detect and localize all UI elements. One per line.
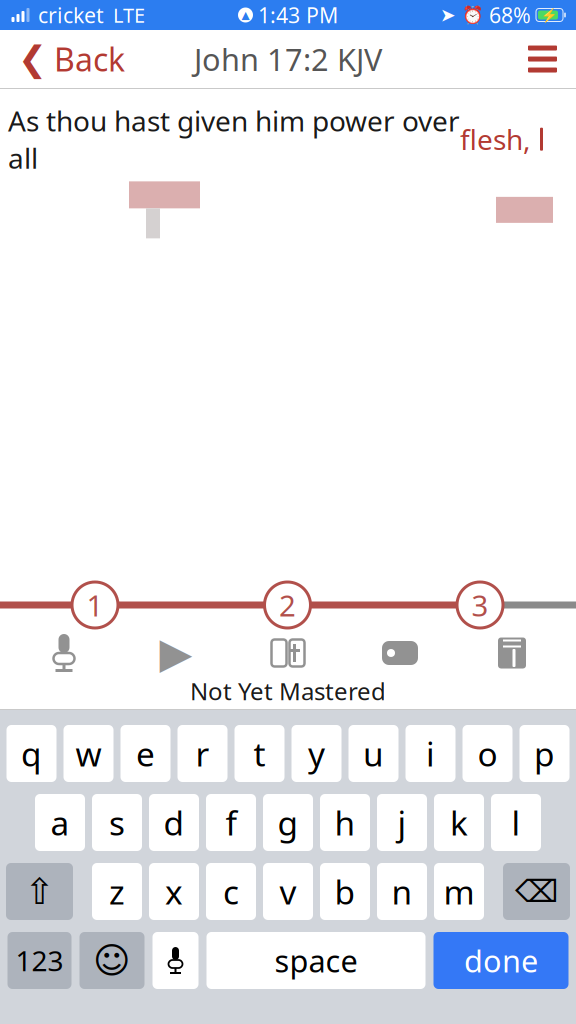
staticText: k bbox=[450, 800, 468, 845]
button[interactable]: g bbox=[263, 794, 313, 851]
staticText: p bbox=[534, 731, 555, 776]
button[interactable]: ☺ bbox=[79, 932, 144, 989]
button[interactable]: 2 bbox=[264, 582, 310, 628]
button[interactable]: l bbox=[491, 794, 541, 851]
staticText: c bbox=[223, 869, 239, 914]
button[interactable]: Record audio bbox=[8, 632, 120, 674]
staticText: z bbox=[109, 869, 125, 914]
button[interactable]: o bbox=[462, 725, 512, 782]
button[interactable]: q bbox=[6, 725, 56, 782]
staticText: 1 bbox=[86, 585, 103, 624]
button[interactable]: Open Bible bbox=[232, 632, 344, 674]
staticText: j bbox=[397, 800, 406, 845]
staticText: w bbox=[75, 731, 101, 776]
staticText: b bbox=[334, 869, 355, 914]
staticText: n bbox=[391, 869, 412, 914]
button[interactable]: x bbox=[149, 863, 199, 920]
button[interactable]: u bbox=[348, 725, 398, 782]
staticText: ▲ bbox=[241, 9, 249, 21]
button[interactable]: z bbox=[92, 863, 142, 920]
button[interactable]: j bbox=[377, 794, 427, 851]
button[interactable]: v bbox=[263, 863, 313, 920]
staticText: Not Yet Mastered bbox=[190, 675, 386, 707]
staticText: ➤ bbox=[440, 4, 456, 26]
staticText: ❮ bbox=[18, 39, 47, 79]
staticText: ⇧ bbox=[24, 871, 54, 912]
button[interactable]: r bbox=[177, 725, 227, 782]
staticText: ☺ bbox=[93, 940, 131, 981]
staticText: g bbox=[277, 800, 298, 845]
button[interactable]: p bbox=[519, 725, 569, 782]
staticText: r bbox=[195, 731, 209, 776]
button[interactable]: 1 bbox=[72, 582, 118, 628]
button[interactable]: 3 bbox=[457, 582, 503, 628]
staticText: Back bbox=[54, 38, 125, 80]
button[interactable]: done bbox=[433, 932, 568, 989]
staticText: ▶ bbox=[159, 629, 192, 677]
staticText: ⚡ bbox=[541, 7, 558, 23]
staticText: John 17:2 KJV bbox=[194, 39, 382, 79]
button[interactable]: b bbox=[320, 863, 370, 920]
staticText: q bbox=[21, 731, 42, 776]
button[interactable]: s bbox=[92, 794, 142, 851]
staticText: a bbox=[50, 800, 69, 845]
button[interactable]: i bbox=[405, 725, 455, 782]
staticText: u bbox=[363, 731, 384, 776]
staticText: 1:43 PM bbox=[258, 1, 338, 29]
button[interactable]: f bbox=[206, 794, 256, 851]
button[interactable]: n bbox=[377, 863, 427, 920]
button[interactable]: Menu bbox=[509, 30, 576, 88]
staticText: d bbox=[163, 800, 184, 845]
staticText: 123 bbox=[15, 942, 63, 979]
button[interactable]: y bbox=[291, 725, 341, 782]
button[interactable]: Play audio bbox=[120, 632, 232, 674]
button[interactable]: Delete bbox=[503, 863, 570, 920]
staticText: LTE bbox=[113, 2, 145, 28]
button[interactable]: Tags bbox=[344, 632, 456, 674]
button[interactable]: k bbox=[434, 794, 484, 851]
staticText: i bbox=[426, 731, 435, 776]
button[interactable]: d bbox=[149, 794, 199, 851]
button[interactable]: Dictation bbox=[152, 932, 198, 989]
staticText: ⏰ bbox=[462, 5, 484, 25]
staticText: cricket bbox=[38, 1, 104, 29]
button[interactable]: t bbox=[234, 725, 284, 782]
button[interactable]: ❮ bbox=[0, 30, 143, 88]
staticText: ⌫ bbox=[515, 874, 558, 909]
staticText: 2 bbox=[279, 585, 296, 624]
staticText: l bbox=[511, 800, 520, 845]
button[interactable]: c bbox=[206, 863, 256, 920]
button[interactable]: Shift bbox=[6, 863, 73, 920]
staticText: m bbox=[443, 869, 474, 914]
staticText: t bbox=[253, 731, 265, 776]
button[interactable]: Notes bbox=[456, 632, 568, 674]
staticText: s bbox=[109, 800, 125, 845]
button[interactable]: h bbox=[320, 794, 370, 851]
button[interactable]: w bbox=[63, 725, 113, 782]
staticText: y bbox=[308, 731, 325, 776]
staticText: h bbox=[334, 800, 355, 845]
staticText: space bbox=[274, 940, 357, 981]
button[interactable]: space bbox=[206, 932, 425, 989]
staticText: e bbox=[136, 731, 155, 776]
button[interactable]: a bbox=[35, 794, 85, 851]
staticText: done bbox=[464, 940, 538, 981]
staticText: 3 bbox=[471, 585, 488, 624]
staticText: flesh, bbox=[460, 121, 531, 158]
staticText: 68% bbox=[489, 1, 531, 29]
staticText: o bbox=[477, 731, 497, 776]
staticText: f bbox=[225, 800, 236, 845]
staticText: As thou hast given him power over all bbox=[8, 102, 460, 176]
button[interactable]: 123 bbox=[7, 932, 71, 989]
button[interactable]: m bbox=[434, 863, 484, 920]
staticText: v bbox=[279, 869, 296, 914]
staticText: x bbox=[165, 869, 183, 914]
button[interactable]: e bbox=[120, 725, 170, 782]
